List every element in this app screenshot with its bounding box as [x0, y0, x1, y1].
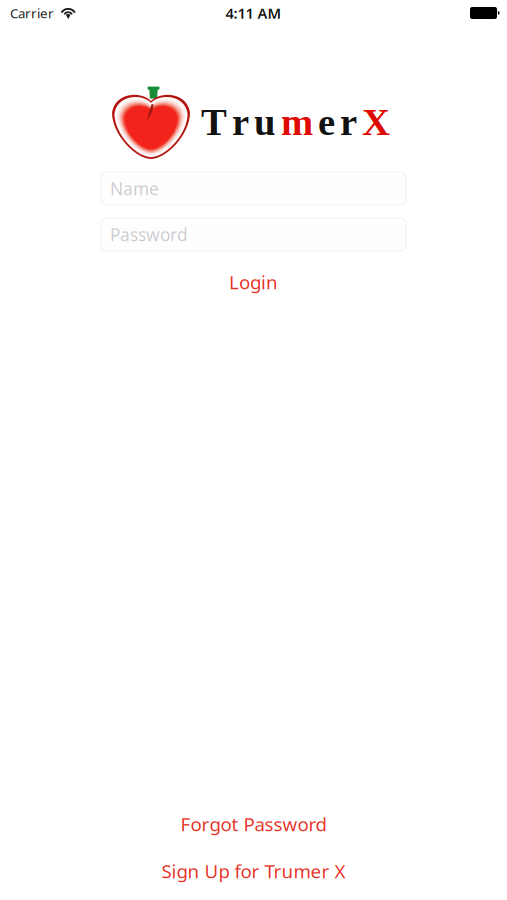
staticText: Forgot Password	[180, 812, 326, 836]
staticText: r	[232, 101, 249, 143]
staticText: X	[362, 101, 390, 143]
staticText: Sign Up for Trumer X	[161, 859, 345, 883]
button[interactable]: Login	[0, 269, 507, 295]
staticText: T	[201, 101, 227, 143]
button[interactable]: Forgot Password	[0, 811, 507, 837]
staticText: u	[254, 101, 276, 143]
staticText: m	[281, 101, 313, 143]
staticText: Carrier	[10, 4, 54, 22]
staticText: 4:11 AM	[225, 3, 281, 23]
button[interactable]: Sign Up for Trumer X	[0, 858, 507, 884]
staticText: Login	[229, 270, 278, 294]
button[interactable]: Password	[101, 218, 406, 251]
staticText: Name	[110, 177, 159, 200]
staticText: Password	[110, 223, 188, 246]
staticText: e	[318, 101, 335, 143]
staticText: r	[340, 101, 357, 143]
button[interactable]: Name	[101, 172, 406, 205]
